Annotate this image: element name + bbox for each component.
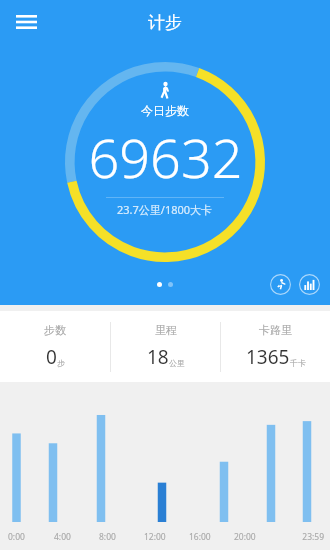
staticText: 69632 [88,120,243,194]
staticText: 卡路里 [259,323,292,337]
button[interactable]: Menu [8,4,44,40]
staticText: 1365 [246,344,290,370]
staticText: 0 [46,344,57,370]
staticText: 4:00 [54,531,99,543]
staticText: 16:00 [189,531,234,543]
staticText: 12:00 [144,531,189,543]
staticText: 千卡 [290,358,306,368]
staticText: 今日步数 [141,103,189,118]
button[interactable]: Statistics [299,274,320,295]
button[interactable]: 步数 [0,311,110,382]
staticText: 23.7公里/1800大卡 [117,202,213,217]
staticText: 0:00 [8,531,54,543]
staticText: 18 [147,344,169,370]
staticText: 23:59 [279,531,324,543]
staticText: 里程 [155,323,177,337]
staticText: 公里 [169,358,185,368]
button[interactable]: 里程 [111,311,220,382]
button[interactable]: 卡路里 [221,311,330,382]
staticText: 8:00 [99,531,144,543]
staticText: 步数 [44,323,66,337]
staticText: 20:00 [234,531,279,543]
staticText: 步 [57,358,65,368]
button[interactable]: Running [270,274,291,295]
staticText: 计步 [148,12,182,33]
